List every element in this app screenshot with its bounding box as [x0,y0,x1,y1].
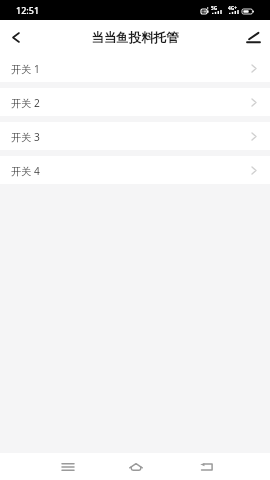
staticText: 当当鱼投料托管 [91,30,179,46]
button[interactable]: Back [184,453,229,480]
button[interactable]: Recent apps [45,453,90,480]
staticText: 4G+ [228,5,237,12]
button[interactable]: Back [0,20,34,54]
staticText: 开关 4 [11,164,40,178]
staticText: 5G [211,5,218,12]
button[interactable]: Home [113,453,158,480]
staticText: 12:51 [16,4,40,16]
button[interactable]: 开关 3 [0,122,270,150]
button[interactable]: 开关 4 [0,156,270,184]
button[interactable]: 开关 1 [0,54,270,82]
button[interactable]: 开关 2 [0,88,270,116]
staticText: 开关 1 [11,62,40,76]
button[interactable]: Edit [236,20,270,54]
staticText: 开关 3 [11,130,40,144]
staticText: 开关 2 [11,96,40,110]
